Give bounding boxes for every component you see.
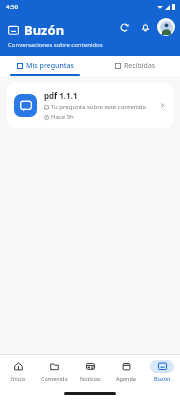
staticText: Contenido: [41, 375, 68, 382]
button[interactable]: Inicio: [0, 355, 36, 387]
staticText: Recibidas: [124, 61, 156, 71]
staticText: Buzón: [154, 375, 171, 382]
button[interactable]: Agenda: [108, 355, 144, 387]
button[interactable]: Noticias: [72, 355, 108, 387]
staticText: Tu pregunta sobre este contenido: [51, 103, 147, 111]
staticText: Conversaciones sobre contenidos: [8, 41, 103, 49]
staticText: Hace 5h: [51, 113, 74, 121]
button[interactable]: Notificaciones: [136, 18, 154, 36]
button[interactable]: Contenido: [36, 355, 72, 387]
button[interactable]: Buzón: [144, 355, 180, 387]
button[interactable]: Actualizar: [115, 18, 133, 36]
button[interactable]: pdf 1.1.1: [7, 83, 173, 128]
button[interactable]: Recibidas: [90, 56, 180, 76]
staticText: Noticias: [80, 375, 101, 382]
staticText: Inicio: [11, 375, 26, 382]
staticText: Buzón: [24, 21, 65, 39]
staticText: pdf 1.1.1: [44, 90, 78, 101]
button[interactable]: Mis preguntas: [0, 56, 90, 76]
staticText: Mis preguntas: [26, 61, 74, 71]
staticText: 4:50: [6, 3, 18, 11]
staticText: Agenda: [116, 375, 136, 382]
button[interactable]: Perfil: [157, 18, 175, 36]
